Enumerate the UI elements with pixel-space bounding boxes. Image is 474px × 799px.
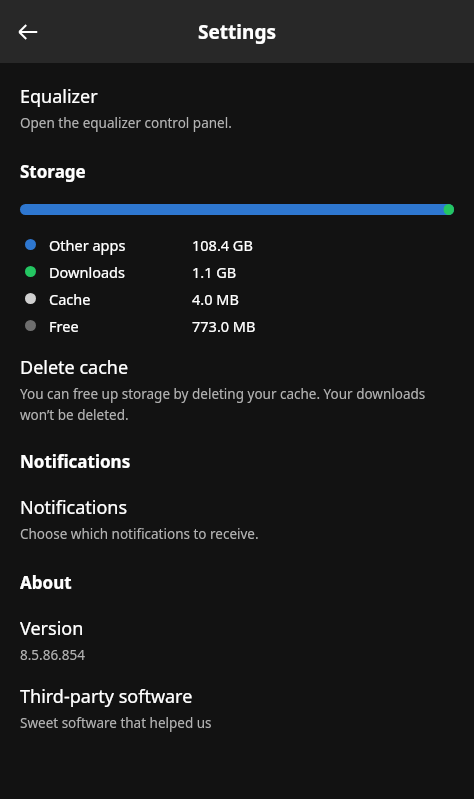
staticText: Free [49, 316, 79, 336]
staticText: Choose which notifications to receive. [20, 525, 259, 543]
staticText: Notifications [20, 450, 131, 473]
staticText: 1.1 GB [192, 262, 237, 282]
staticText: Equalizer [20, 84, 98, 109]
staticText: Third-party software [20, 684, 193, 709]
staticText: Sweet software that helped us [20, 714, 212, 732]
staticText: 8.5.86.854 [20, 646, 85, 664]
staticText: Other apps [49, 235, 126, 255]
staticText: Settings [198, 19, 276, 45]
staticText: 4.0 MB [192, 289, 239, 309]
button[interactable]: Equalizer [20, 84, 454, 132]
staticText: Notifications [20, 495, 128, 520]
staticText: Version [20, 616, 84, 641]
staticText: Cache [49, 289, 91, 309]
button[interactable]: Notifications [20, 495, 454, 543]
button[interactable]: Third-party software [20, 684, 454, 732]
staticText: Open the equalizer control panel. [20, 114, 232, 132]
staticText: Delete cache [20, 355, 129, 380]
button[interactable]: Back [8, 12, 48, 52]
staticText: 773.0 MB [192, 316, 256, 336]
staticText: Downloads [49, 262, 125, 282]
staticText: 108.4 GB [192, 235, 253, 255]
button[interactable]: Delete cache [20, 355, 454, 424]
staticText: Storage [20, 160, 86, 183]
button[interactable]: Version [20, 616, 454, 664]
staticText: About [20, 571, 72, 594]
staticText: You can free up storage by deleting your… [20, 385, 454, 424]
